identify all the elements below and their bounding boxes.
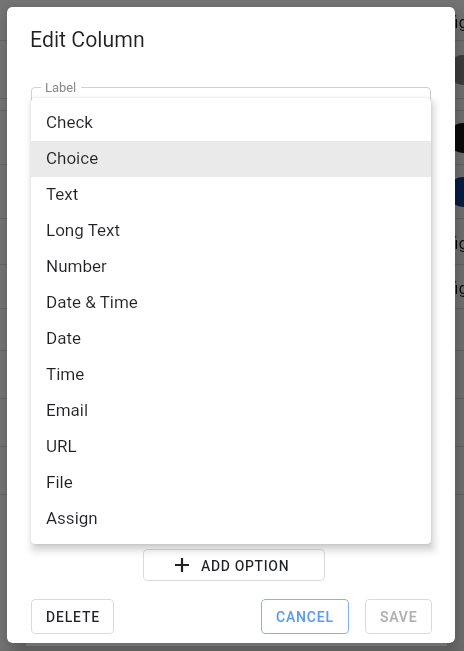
staticText: Number xyxy=(46,256,107,276)
button[interactable]: Time xyxy=(31,357,431,393)
button[interactable]: File xyxy=(31,465,431,501)
staticText: Time xyxy=(46,364,85,384)
button[interactable]: Date & Time xyxy=(31,285,431,321)
button[interactable]: Label, column type xyxy=(31,87,431,135)
button[interactable]: SAVE xyxy=(365,599,432,634)
staticText: SAVE xyxy=(380,609,418,625)
staticText: Long Text xyxy=(46,220,121,240)
button[interactable]: Choice xyxy=(31,141,431,177)
staticText: Check xyxy=(46,112,93,132)
staticText: Text xyxy=(46,184,79,204)
staticText: config xyxy=(421,233,464,253)
staticText: Date & Time xyxy=(46,292,138,312)
button[interactable]: URL xyxy=(31,429,431,465)
staticText: Date xyxy=(46,328,81,348)
staticText: File xyxy=(46,472,73,492)
staticText: config xyxy=(421,12,464,32)
button[interactable]: ADD OPTION xyxy=(143,549,325,581)
staticText: URL xyxy=(46,436,77,456)
button[interactable]: Check xyxy=(31,105,431,141)
staticText: Email xyxy=(46,400,89,420)
staticText: ADD OPTION xyxy=(201,558,290,574)
staticText: config xyxy=(421,278,464,298)
button[interactable]: Long Text xyxy=(31,213,431,249)
button[interactable]: Email xyxy=(31,393,431,429)
staticText: Choice xyxy=(46,148,99,168)
button[interactable]: Date xyxy=(31,321,431,357)
staticText: CANCEL xyxy=(276,609,334,625)
staticText: Edit Column xyxy=(30,27,145,52)
button[interactable]: DELETE xyxy=(31,599,114,634)
staticText: Assign xyxy=(46,508,98,528)
staticText: DELETE xyxy=(46,609,100,625)
button[interactable]: CANCEL xyxy=(261,599,349,634)
staticText: Label xyxy=(45,80,77,95)
button[interactable]: Text xyxy=(31,177,431,213)
button[interactable]: Assign xyxy=(31,501,431,537)
button[interactable]: Number xyxy=(31,249,431,285)
